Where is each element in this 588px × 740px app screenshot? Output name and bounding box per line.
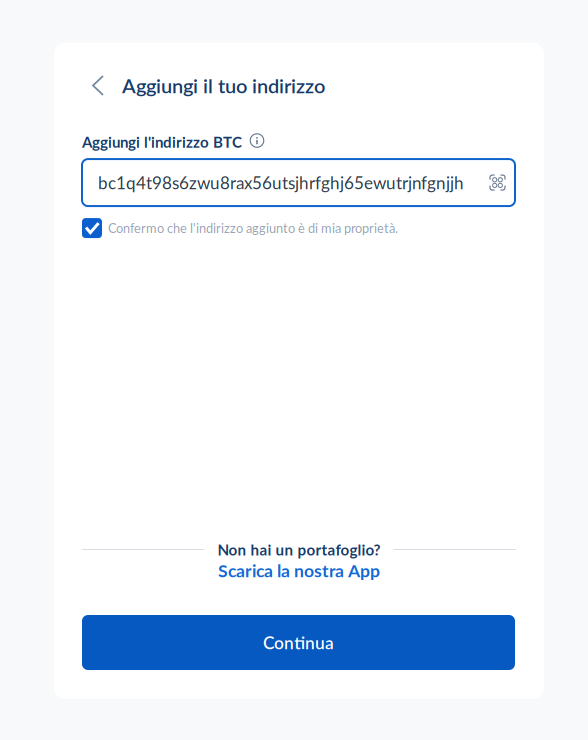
button[interactable]: Confermo che l'indirizzo aggiunto è di m… xyxy=(82,218,102,238)
staticText: Scarica la nostra App xyxy=(218,560,380,581)
button[interactable]: Scarica la nostra App xyxy=(82,560,516,581)
staticText: Aggiungi l'indirizzo BTC xyxy=(82,133,242,151)
staticText: Confermo che l'indirizzo aggiunto è di m… xyxy=(108,220,398,236)
button[interactable]: Continua xyxy=(82,615,515,670)
staticText: Continua xyxy=(263,632,334,653)
staticText: Aggiungi il tuo indirizzo xyxy=(122,73,325,97)
staticText: bc1q4t98s6zwu8rax56utsjhrfghj65ewutrjnfg… xyxy=(98,172,464,193)
button[interactable]: Scansiona codice QR xyxy=(490,175,505,190)
staticText: Non hai un portafoglio? xyxy=(217,540,380,559)
button[interactable]: Indietro xyxy=(85,69,111,102)
